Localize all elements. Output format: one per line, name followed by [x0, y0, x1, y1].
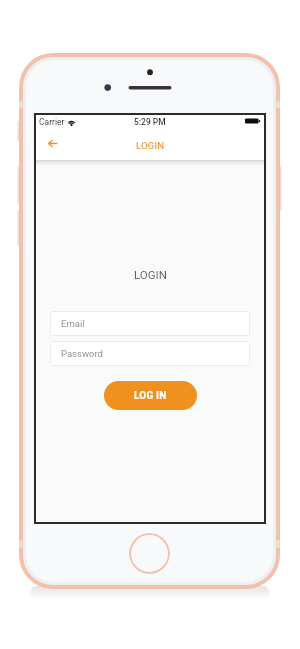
staticText: LOGIN: [136, 140, 165, 151]
staticText: Carrier: [39, 117, 65, 127]
staticText: LOG IN: [134, 390, 167, 402]
staticText: Email: [61, 318, 85, 329]
button[interactable]: Back: [41, 132, 63, 154]
staticText: Password: [61, 348, 103, 359]
staticText: 5:29 PM: [134, 117, 166, 127]
staticText: LOGIN: [134, 268, 167, 281]
button[interactable]: Home: [129, 533, 170, 574]
button[interactable]: Password: [50, 341, 250, 366]
button[interactable]: Email: [50, 311, 250, 336]
button[interactable]: LOG IN: [104, 381, 197, 410]
